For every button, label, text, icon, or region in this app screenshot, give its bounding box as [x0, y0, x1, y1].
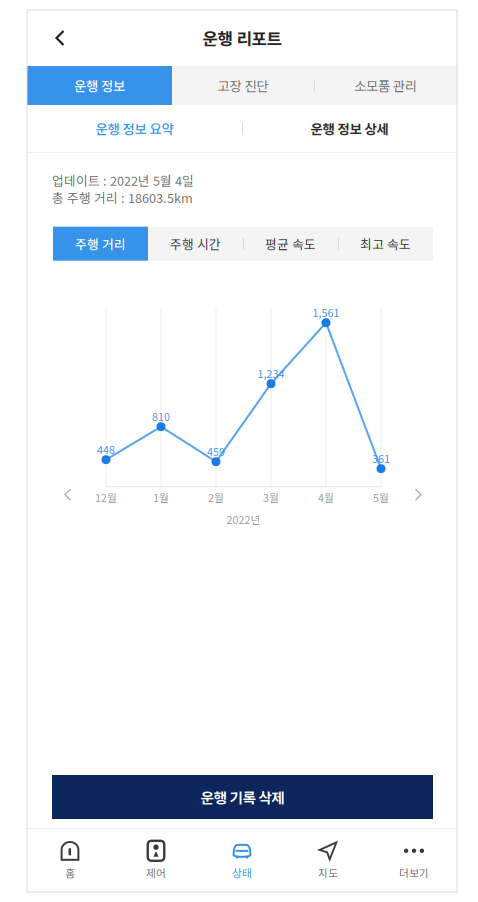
button[interactable]: 운행 정보 상세 — [242, 105, 457, 152]
staticText: 총 주행 거리 : 18603.5km — [52, 188, 193, 207]
staticText: 주행 거리 — [75, 234, 126, 253]
staticText: 361 — [372, 451, 390, 466]
button[interactable]: 운행 정보 — [27, 66, 172, 105]
staticText: 1월 — [153, 490, 169, 505]
button[interactable]: 운행 기록 삭제 — [52, 775, 433, 819]
button[interactable]: 홈 — [27, 829, 113, 892]
staticText: 1,234 — [257, 366, 284, 381]
button[interactable]: Next period — [404, 481, 432, 509]
staticText: 운행 기록 삭제 — [200, 786, 284, 808]
staticText: 최고 속도 — [360, 234, 411, 253]
button[interactable]: 주행 시간 — [148, 227, 243, 261]
button[interactable]: Back — [38, 16, 82, 60]
staticText: 12월 — [95, 490, 117, 505]
staticText: 운행 정보 요약 — [95, 119, 173, 138]
staticText: 1,561 — [312, 305, 339, 320]
staticText: 주행 시간 — [170, 234, 221, 253]
staticText: 상태 — [232, 865, 252, 880]
staticText: 810 — [152, 409, 170, 424]
staticText: 고장 진단 — [217, 76, 268, 95]
button[interactable]: 주행 거리 — [53, 227, 148, 261]
staticText: 제어 — [146, 865, 166, 880]
button[interactable]: 더보기 — [371, 829, 457, 892]
staticText: 3월 — [263, 490, 279, 505]
staticText: 더보기 — [399, 865, 429, 880]
button[interactable]: 상태 — [199, 829, 285, 892]
staticText: 업데이트 : 2022년 5월 4일 — [52, 171, 194, 189]
staticText: 4월 — [318, 490, 334, 505]
staticText: 2022년 — [226, 512, 260, 527]
staticText: 지도 — [318, 865, 338, 880]
button[interactable]: 고장 진단 — [172, 66, 314, 105]
button[interactable]: 지도 — [285, 829, 371, 892]
staticText: 2월 — [208, 490, 224, 505]
staticText: 459 — [207, 444, 225, 459]
staticText: 운행 정보 — [74, 76, 125, 95]
button[interactable]: Previous period — [54, 481, 82, 509]
staticText: 홈 — [65, 865, 75, 880]
button[interactable]: 평균 속도 — [243, 227, 338, 261]
button[interactable]: 최고 속도 — [338, 227, 433, 261]
staticText: 평균 속도 — [265, 234, 316, 253]
button[interactable]: 운행 정보 요약 — [27, 105, 242, 152]
staticText: 운행 정보 상세 — [310, 119, 388, 138]
button[interactable]: 소모품 관리 — [314, 66, 457, 105]
staticText: 448 — [97, 442, 115, 457]
button[interactable]: 제어 — [113, 829, 199, 892]
staticText: 운행 리포트 — [202, 26, 281, 50]
staticText: 소모품 관리 — [354, 76, 417, 95]
staticText: 5월 — [373, 490, 389, 505]
